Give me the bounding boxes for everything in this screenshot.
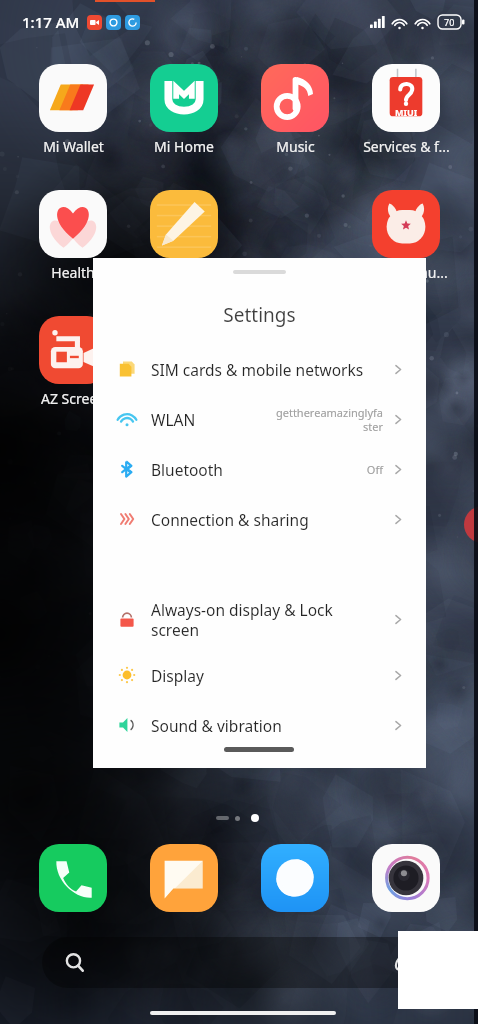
staticText: Off bbox=[271, 462, 383, 477]
staticText: Mi Wallet bbox=[43, 137, 104, 156]
staticText: 1:17 AM bbox=[22, 12, 80, 32]
button[interactable] bbox=[21, 844, 125, 912]
staticText: Services & f... bbox=[363, 137, 450, 156]
button[interactable] bbox=[354, 844, 458, 912]
staticText: Bluetooth bbox=[151, 459, 223, 480]
button[interactable]: Display bbox=[93, 650, 426, 700]
button[interactable]: Mi Commu... bbox=[354, 190, 458, 282]
button[interactable]: Bluetooth bbox=[93, 444, 426, 494]
button[interactable]: WLAN bbox=[93, 394, 426, 444]
staticText: Mi Commu... bbox=[364, 263, 448, 282]
button[interactable]: Connection & sharing bbox=[93, 494, 426, 544]
staticText: Display bbox=[151, 665, 204, 686]
button[interactable] bbox=[132, 190, 236, 258]
staticText: Settings bbox=[93, 302, 426, 328]
button[interactable]: Always-on display & Lock screen bbox=[93, 589, 426, 650]
staticText: Always-on display & Lock screen bbox=[151, 599, 348, 641]
button[interactable] bbox=[132, 844, 236, 912]
button[interactable]: Mi Wallet bbox=[21, 64, 125, 156]
staticText: 70 bbox=[444, 16, 455, 28]
button[interactable]: Health bbox=[21, 190, 125, 282]
button[interactable]: Search bbox=[42, 937, 436, 988]
button[interactable]: Music bbox=[243, 64, 347, 156]
button[interactable]: SIM cards & mobile networks bbox=[93, 344, 426, 394]
staticText: Health bbox=[51, 263, 95, 282]
staticText: AZ Screen bbox=[41, 389, 106, 408]
button[interactable]: AZ Screen bbox=[21, 316, 125, 408]
staticText: Music bbox=[276, 137, 315, 156]
button[interactable]: Sound & vibration bbox=[93, 700, 426, 750]
staticText: SIM cards & mobile networks bbox=[151, 359, 364, 380]
staticText: Connection & sharing bbox=[151, 509, 309, 530]
button[interactable]: Mi Home bbox=[132, 64, 236, 156]
staticText: Sound & vibration bbox=[151, 715, 282, 736]
button[interactable]: MIUI bbox=[354, 64, 458, 156]
staticText: WLAN bbox=[151, 409, 196, 430]
staticText: MIUI bbox=[395, 106, 418, 118]
staticText: getthereamazinglyfaster bbox=[271, 405, 383, 434]
button[interactable] bbox=[243, 844, 347, 912]
staticText: Mi Home bbox=[154, 137, 214, 156]
